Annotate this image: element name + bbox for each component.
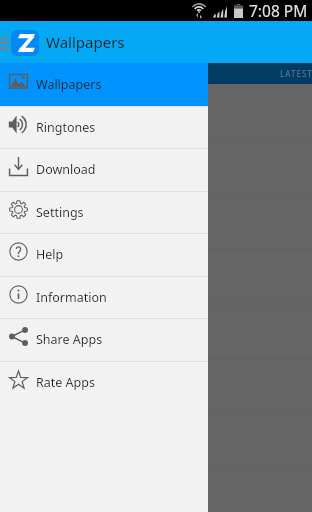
button[interactable]: Share Apps — [0, 318, 208, 361]
button[interactable]: Information — [0, 276, 208, 318]
button[interactable]: Rate Apps — [0, 361, 208, 403]
button[interactable]: Settings — [0, 191, 208, 233]
button[interactable]: Ringtones — [0, 106, 208, 148]
staticText: Help — [36, 246, 64, 263]
other: App logo — [11, 30, 39, 56]
staticText: LATEST — [280, 68, 312, 79]
button[interactable]: Download — [0, 148, 208, 191]
staticText: Wallpapers — [36, 76, 102, 93]
button[interactable]: Open navigation drawer — [0, 21, 13, 63]
staticText: Download — [36, 161, 96, 178]
staticText: Settings — [36, 204, 84, 221]
staticText: Rate Apps — [36, 374, 95, 391]
staticText: Ringtones — [36, 119, 96, 136]
staticText: Information — [36, 289, 107, 306]
button[interactable]: Wallpapers — [0, 63, 208, 106]
staticText: Wallpapers — [46, 32, 125, 52]
staticText: Share Apps — [36, 331, 103, 348]
button[interactable]: Help — [0, 233, 208, 276]
staticText: 7:08 PM — [249, 0, 308, 21]
